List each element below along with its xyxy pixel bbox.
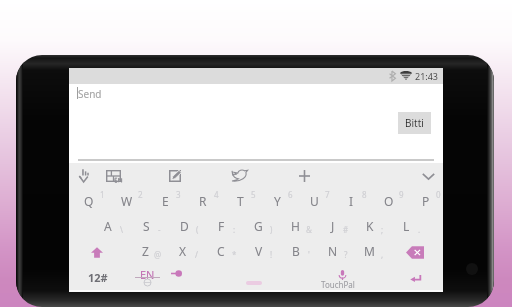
staticText: L	[403, 218, 410, 234]
button[interactable]: P	[406, 188, 443, 213]
staticText: '	[308, 249, 310, 260]
button[interactable]: L	[387, 213, 424, 238]
button[interactable]: I	[332, 188, 369, 213]
staticText: I	[349, 193, 354, 209]
button[interactable]: TouchPal	[187, 263, 417, 290]
button[interactable]: Compose	[169, 170, 181, 182]
button[interactable]: E	[145, 188, 183, 213]
button[interactable]: Switch language	[165, 263, 187, 290]
staticText: S	[143, 218, 150, 234]
staticText: /	[195, 249, 198, 260]
staticText: 8	[362, 189, 367, 200]
staticText: 3	[176, 189, 181, 200]
button[interactable]: Shift	[69, 238, 125, 263]
staticText: 4	[214, 189, 219, 200]
staticText: D	[180, 218, 189, 234]
staticText: 7	[325, 189, 330, 200]
button[interactable]: U	[295, 188, 332, 213]
staticText: J	[331, 218, 335, 234]
button[interactable]: J	[313, 213, 350, 238]
staticText: @	[154, 249, 162, 260]
button[interactable]: Y	[258, 188, 295, 213]
button[interactable]: M	[350, 238, 387, 263]
staticText: 6	[288, 189, 293, 200]
button[interactable]: V	[239, 238, 276, 263]
staticText: #	[343, 224, 349, 235]
staticText: Y	[274, 193, 281, 209]
staticText: G	[254, 218, 263, 234]
button[interactable]: C	[201, 238, 239, 263]
staticText: &	[306, 224, 312, 235]
staticText: C	[217, 243, 225, 259]
staticText: 2	[138, 189, 143, 200]
staticText: Z	[142, 243, 149, 259]
staticText: V	[255, 243, 263, 259]
staticText: 9	[399, 189, 404, 200]
button[interactable]: Voice input	[79, 169, 90, 182]
staticText: )	[270, 224, 273, 235]
button[interactable]: Enter	[395, 263, 443, 290]
staticText: \	[120, 224, 123, 235]
staticText: !	[270, 249, 273, 260]
staticText: N	[328, 243, 338, 259]
staticText: W	[121, 193, 133, 209]
staticText: TouchPal	[321, 279, 355, 290]
button[interactable]: Add	[299, 170, 310, 182]
staticText: Bitti	[405, 116, 424, 130]
staticText: 1	[100, 189, 105, 200]
staticText: ?	[344, 249, 348, 260]
staticText: 21:43	[415, 70, 439, 82]
staticText: A	[104, 218, 112, 234]
button[interactable]: Hide keyboard	[422, 173, 435, 180]
button[interactable]: A	[88, 213, 126, 238]
staticText: P	[422, 193, 430, 209]
button[interactable]: N	[313, 238, 350, 263]
button[interactable]: K	[350, 213, 387, 238]
button[interactable]: W	[107, 188, 145, 213]
button[interactable]: Backspace	[387, 238, 443, 263]
staticText: 12#	[88, 270, 108, 285]
staticText: 0	[436, 189, 441, 200]
button[interactable]: Bitti	[398, 112, 431, 134]
button[interactable]: Keyboard layout	[106, 170, 121, 182]
button[interactable]: G	[239, 213, 276, 238]
button[interactable]: EN	[125, 263, 167, 290]
staticText: :	[233, 224, 236, 235]
staticText: *	[232, 249, 237, 260]
staticText: K	[366, 218, 374, 234]
staticText: 5	[251, 189, 256, 200]
button[interactable]: 12#	[69, 263, 125, 290]
button[interactable]: S	[126, 213, 164, 238]
staticText: ;	[381, 224, 384, 235]
staticText: (	[196, 224, 199, 235]
button[interactable]: F	[202, 213, 239, 238]
button[interactable]: D	[164, 213, 202, 238]
button[interactable]: O	[369, 188, 406, 213]
staticText: T	[237, 193, 244, 209]
button[interactable]: Q	[69, 188, 107, 213]
button[interactable]: R	[183, 188, 221, 213]
staticText: B	[292, 243, 300, 259]
staticText: E	[162, 193, 169, 209]
staticText: Send	[78, 87, 102, 101]
button[interactable]: H	[276, 213, 313, 238]
staticText: X	[179, 243, 187, 259]
staticText: U	[310, 193, 319, 209]
staticText: EN	[140, 267, 155, 282]
staticText: F	[218, 218, 225, 234]
button[interactable]: Z	[125, 238, 163, 263]
staticText: R	[199, 193, 207, 209]
staticText: Q	[84, 193, 94, 209]
button[interactable]: B	[276, 238, 313, 263]
button[interactable]: Twitter	[231, 169, 248, 182]
button[interactable]: T	[221, 188, 258, 213]
staticText: ,	[381, 249, 384, 260]
staticText: .	[418, 224, 421, 235]
staticText: M	[364, 243, 375, 259]
staticText: -	[158, 224, 161, 235]
staticText: O	[384, 193, 394, 209]
staticText: H	[291, 218, 300, 234]
button[interactable]: X	[163, 238, 201, 263]
